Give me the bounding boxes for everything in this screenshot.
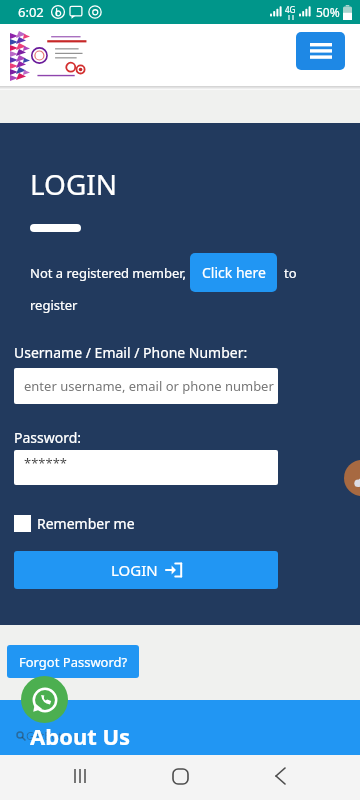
staticText: Username / Email / Phone Number: <box>14 343 248 362</box>
button[interactable] <box>162 758 198 794</box>
staticText: 50% <box>316 4 340 20</box>
staticText: LOGIN <box>30 165 118 203</box>
button[interactable] <box>296 32 345 70</box>
staticText: Click here <box>202 263 266 282</box>
staticText: register <box>30 296 78 314</box>
staticText: Remember me <box>37 514 135 533</box>
staticText: Password: <box>14 428 82 447</box>
staticText: 4G <box>285 4 296 15</box>
button[interactable]: Forgot Password? <box>7 645 139 678</box>
button[interactable] <box>262 758 298 794</box>
staticText: About Us <box>30 721 131 751</box>
staticText: to <box>284 264 297 282</box>
staticText: ****** <box>24 454 67 472</box>
staticText: GetButton <box>26 728 80 743</box>
staticText: LOGIN <box>111 560 158 580</box>
staticText: Not a registered member, <box>30 264 187 282</box>
staticText: Forgot Password? <box>19 653 128 671</box>
button[interactable]: enter username, email or phone number <box>14 368 278 404</box>
button[interactable]: ****** <box>14 450 278 485</box>
button[interactable]: Remember me <box>14 514 135 533</box>
button[interactable] <box>21 676 68 723</box>
button[interactable]: LOGIN <box>14 551 278 589</box>
staticText: enter username, email or phone number <box>24 377 274 395</box>
button[interactable]: Click here <box>190 253 277 292</box>
button[interactable] <box>62 758 98 794</box>
staticText: 6:02 <box>18 3 44 21</box>
button[interactable] <box>344 460 360 496</box>
